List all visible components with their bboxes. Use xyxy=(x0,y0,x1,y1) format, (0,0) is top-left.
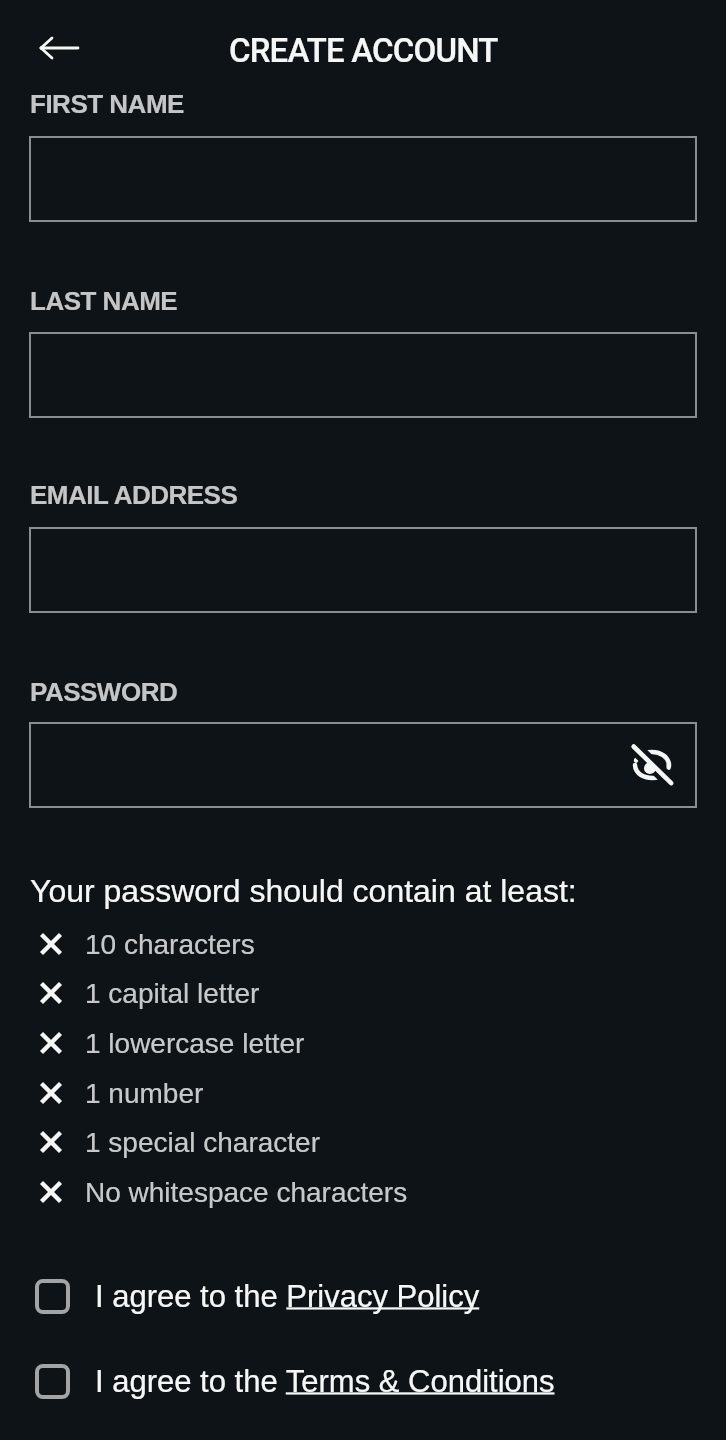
staticText: 1 capital letter xyxy=(85,978,260,1009)
staticText: 10 characters xyxy=(85,929,255,960)
button[interactable] xyxy=(29,332,697,418)
staticText: 1 number xyxy=(85,1078,204,1109)
staticText: 1 special character xyxy=(85,1127,321,1158)
button[interactable] xyxy=(29,722,697,808)
staticText: PASSWORD xyxy=(30,677,178,706)
staticText: EMAIL ADDRESS xyxy=(30,480,238,509)
button[interactable] xyxy=(29,136,697,222)
staticText: LAST NAME xyxy=(30,286,178,315)
button[interactable] xyxy=(29,527,697,613)
button[interactable]: I agree to the Privacy Policy xyxy=(35,1276,480,1316)
button[interactable]: I agree to the Terms & Conditions xyxy=(35,1361,555,1401)
staticText: CREATE ACCOUNT xyxy=(229,31,498,70)
button[interactable] xyxy=(36,30,84,66)
staticText: I agree to the Privacy Policy xyxy=(95,1279,480,1314)
staticText: 1 lowercase letter xyxy=(85,1028,305,1059)
staticText: No whitespace characters xyxy=(85,1177,408,1208)
button[interactable] xyxy=(628,741,676,789)
staticText: Your password should contain at least: xyxy=(30,873,577,909)
staticText: FIRST NAME xyxy=(30,89,184,118)
staticText: I agree to the Terms & Conditions xyxy=(95,1364,555,1399)
